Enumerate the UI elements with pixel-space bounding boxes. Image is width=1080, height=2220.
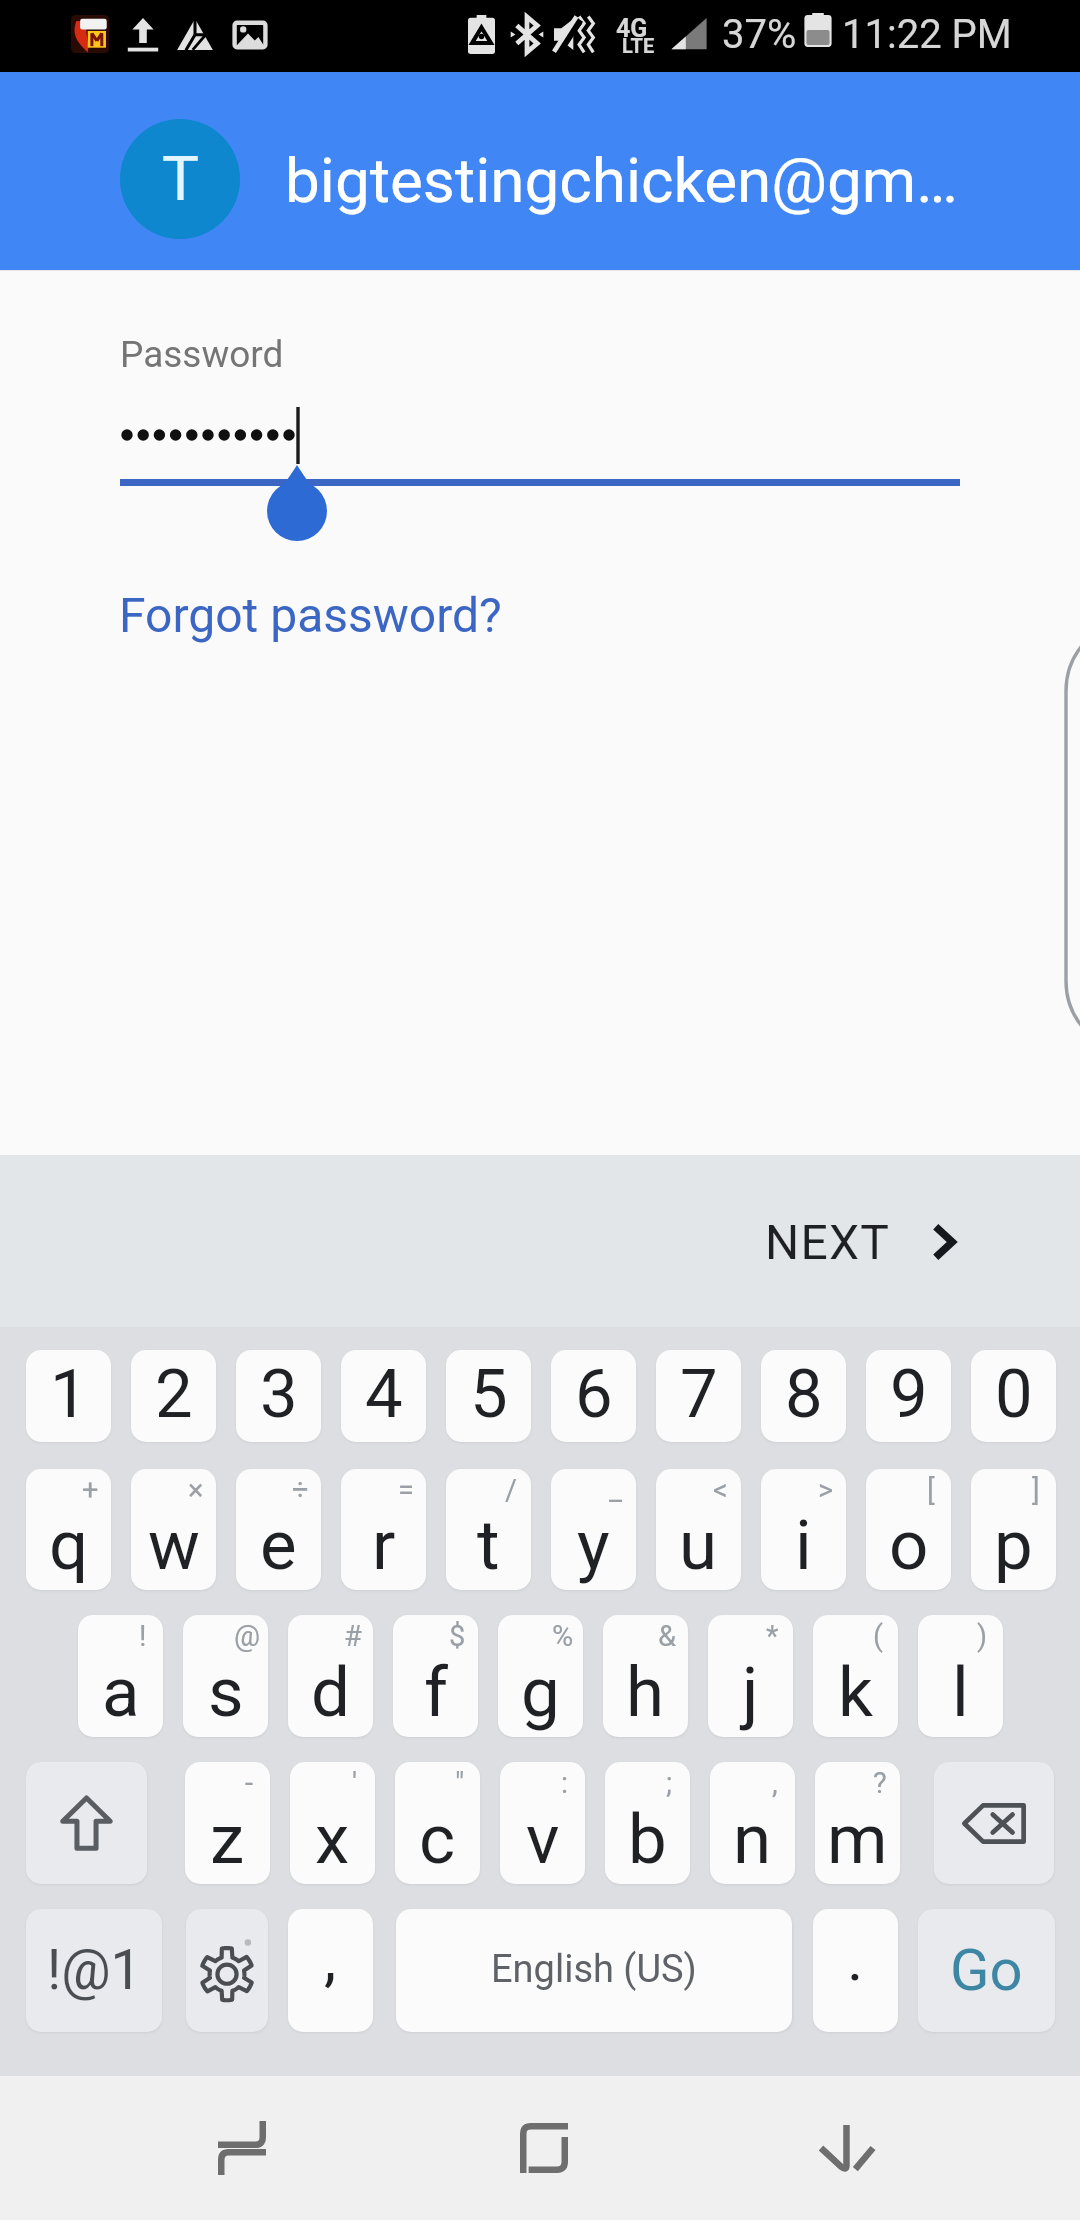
staticText: # [344, 1619, 362, 1653]
button[interactable]: Hide keyboard [777, 2092, 917, 2204]
button[interactable]: Home [474, 2090, 614, 2206]
button[interactable]: * [708, 1615, 793, 1737]
button[interactable]: 9 [866, 1350, 951, 1442]
button[interactable]: / [446, 1469, 531, 1590]
staticText: d [311, 1652, 350, 1733]
staticText: ' [352, 1766, 358, 1800]
staticText: b [628, 1799, 667, 1880]
staticText: 1 [50, 1355, 88, 1434]
button[interactable]: , [710, 1762, 795, 1884]
button[interactable]: English (US) [396, 1909, 792, 2032]
button[interactable]: ( [813, 1615, 898, 1737]
button[interactable]: , [288, 1909, 373, 2032]
staticText: 3 [260, 1355, 298, 1434]
button[interactable]: Shift [26, 1762, 147, 1884]
button[interactable]: 5 [446, 1350, 531, 1442]
button[interactable]: % [498, 1615, 583, 1737]
button[interactable]: + [26, 1469, 111, 1590]
staticText: " [455, 1766, 465, 1800]
staticText: ÷ [292, 1473, 309, 1507]
staticText: 11:22 PM [842, 11, 1012, 58]
button[interactable]: - [185, 1762, 270, 1884]
staticText: ; [666, 1766, 673, 1800]
button[interactable]: T [0, 72, 1080, 270]
staticText: v [526, 1799, 560, 1880]
button[interactable]: ÷ [236, 1469, 321, 1590]
staticText: ? [873, 1766, 887, 1800]
staticText: T [162, 142, 199, 215]
staticText: 0 [995, 1355, 1033, 1434]
staticText: k [838, 1652, 873, 1733]
staticText: Forgot password? [119, 587, 502, 643]
staticText: LTE [622, 34, 655, 57]
button[interactable]: . [813, 1909, 898, 2032]
button[interactable]: ] [971, 1469, 1056, 1590]
staticText: n [733, 1799, 772, 1880]
staticText: !@1 [47, 1938, 142, 2002]
staticText: . [847, 1922, 864, 1995]
staticText: 8 [785, 1355, 823, 1434]
staticText: NEXT [765, 1214, 891, 1270]
staticText: , [324, 1922, 337, 1995]
staticText: ! [139, 1619, 147, 1653]
staticText: ) [977, 1619, 988, 1653]
button[interactable]: × [131, 1469, 216, 1590]
button[interactable]: Recent apps [172, 2088, 312, 2208]
button[interactable]: Forgot password? [113, 587, 508, 643]
button[interactable]: 0 [971, 1350, 1056, 1442]
button[interactable]: Keyboard settings [186, 1909, 268, 2032]
button[interactable]: NEXT [742, 1198, 982, 1286]
button[interactable]: 2 [131, 1350, 216, 1442]
button[interactable]: 7 [656, 1350, 741, 1442]
staticText: 6 [575, 1355, 613, 1434]
button[interactable]: & [603, 1615, 688, 1737]
staticText: q [49, 1505, 89, 1586]
button[interactable]: 4 [341, 1350, 426, 1442]
staticText: Password [120, 333, 284, 376]
button[interactable]: : [500, 1762, 585, 1884]
button[interactable]: # [288, 1615, 373, 1737]
button[interactable]: $ [393, 1615, 478, 1737]
button[interactable]: ? [815, 1762, 900, 1884]
button[interactable]: 8 [761, 1350, 846, 1442]
staticText: f [424, 1652, 448, 1733]
staticText: _ [609, 1473, 623, 1507]
staticText: p [994, 1505, 1033, 1586]
button[interactable]: @ [183, 1615, 268, 1737]
staticText: , [772, 1766, 778, 1800]
button[interactable]: Go [918, 1909, 1055, 2032]
staticText: Go [950, 1936, 1023, 2004]
button[interactable]: _ [551, 1469, 636, 1590]
button[interactable]: 1 [26, 1350, 111, 1442]
button[interactable]: = [341, 1469, 426, 1590]
button[interactable]: 3 [236, 1350, 321, 1442]
button[interactable]: " [395, 1762, 480, 1884]
button[interactable]: ! [78, 1615, 163, 1737]
staticText: i [795, 1505, 812, 1586]
button[interactable]: > [761, 1469, 846, 1590]
button[interactable]: !@1 [26, 1909, 162, 2032]
button[interactable]: ' [290, 1762, 375, 1884]
staticText: x [315, 1799, 350, 1880]
staticText: o [889, 1505, 929, 1586]
staticText: bigtestingchicken@gm… [285, 144, 958, 217]
staticText: % [552, 1619, 574, 1653]
staticText: z [210, 1799, 245, 1880]
staticText: a [102, 1652, 140, 1733]
button[interactable]: 6 [551, 1350, 636, 1442]
staticText: ] [1032, 1473, 1040, 1507]
button[interactable]: ; [605, 1762, 690, 1884]
button[interactable]: Backspace [934, 1762, 1054, 1884]
staticText: j [742, 1652, 759, 1733]
staticText: 4G [616, 14, 648, 43]
staticText: 4 [365, 1355, 403, 1434]
button[interactable]: [ [866, 1469, 951, 1590]
button[interactable]: < [656, 1469, 741, 1590]
button[interactable]: ) [918, 1615, 1003, 1737]
staticText: s [208, 1652, 244, 1733]
staticText: y [577, 1505, 610, 1586]
staticText: l [952, 1652, 969, 1733]
staticText: : [561, 1766, 569, 1800]
staticText: g [521, 1652, 560, 1733]
staticText: w [148, 1505, 200, 1586]
